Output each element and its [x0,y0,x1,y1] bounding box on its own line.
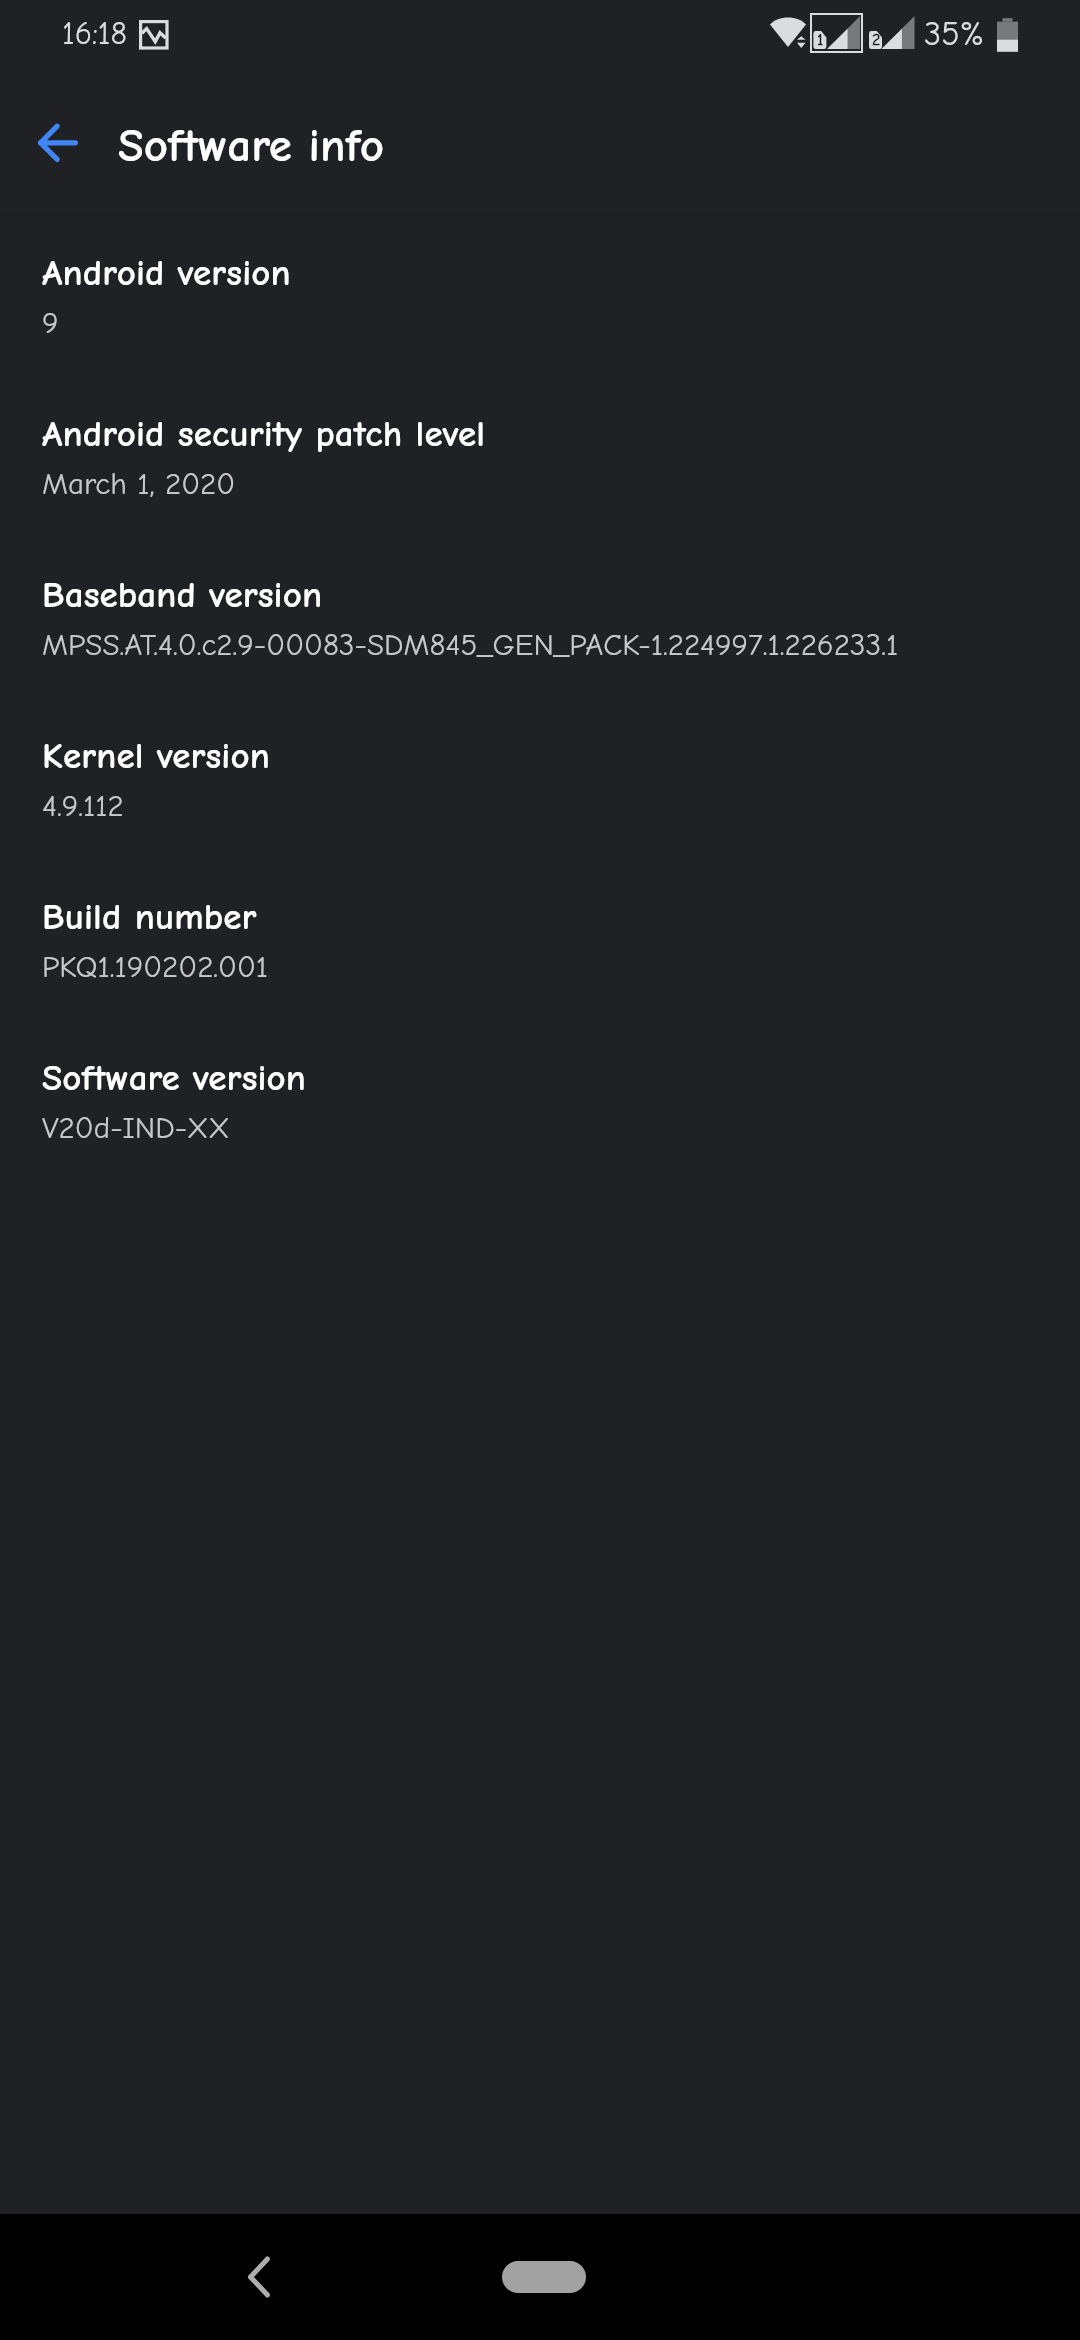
staticText: 16:18 [62,15,127,52]
staticText: Software info [118,119,384,173]
staticText: Build number [42,896,257,939]
button[interactable]: Kernel version [0,735,1080,896]
staticText: 1 [817,31,824,49]
staticText: Baseband version [42,574,323,617]
button[interactable]: Android security patch level [0,413,1080,574]
staticText: MPSS.AT.4.0.c2.9-00083-SDM845_GEN_PACK-1… [42,627,899,663]
staticText: V20d-IND-XX [42,1110,230,1146]
button[interactable]: Back [14,97,102,185]
button[interactable]: Home [502,2261,586,2293]
staticText: 9 [42,305,59,341]
staticText: Android version [42,252,291,295]
staticText: Android security patch level [42,413,486,456]
button[interactable]: Android version [0,252,1080,413]
staticText: March 1, 2020 [42,466,236,502]
staticText: PKQ1.190202.001 [42,949,269,985]
staticText: 2 [872,31,881,49]
staticText: 35% [924,14,985,53]
button[interactable]: Back [197,2217,317,2337]
staticText: Software version [42,1057,307,1100]
staticText: 4.9.112 [42,788,124,824]
button[interactable]: Software version [0,1057,1080,1218]
staticText: Kernel version [42,735,270,778]
button[interactable]: Build number [0,896,1080,1057]
button[interactable]: Baseband version [0,574,1080,735]
